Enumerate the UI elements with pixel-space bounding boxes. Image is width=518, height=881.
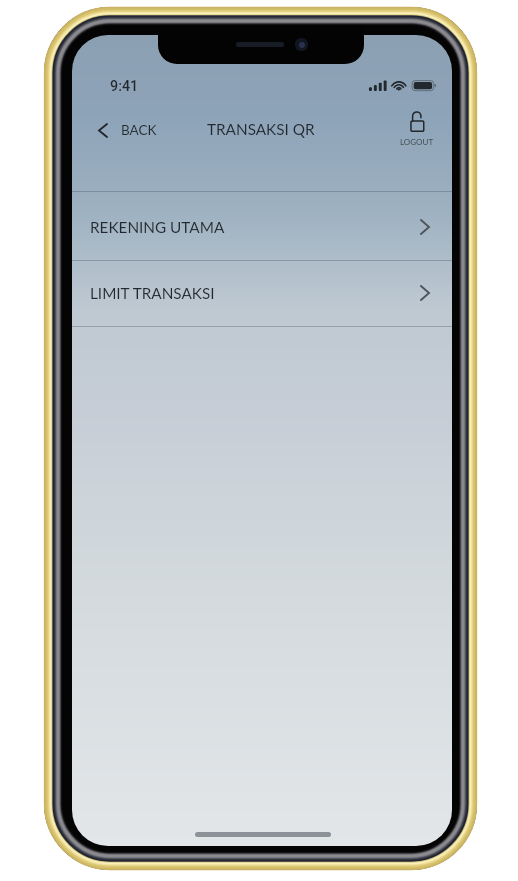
staticText: BACK xyxy=(121,122,157,138)
button[interactable]: Logout xyxy=(395,108,439,150)
button[interactable]: LIMIT TRANSAKSI xyxy=(72,261,452,326)
staticText: LOGOUT xyxy=(400,137,434,147)
button[interactable]: BACK xyxy=(90,113,167,147)
button[interactable]: REKENING UTAMA xyxy=(72,192,452,260)
staticText: TRANSAKSI QR xyxy=(207,120,315,138)
staticText: LIMIT TRANSAKSI xyxy=(90,284,215,302)
staticText: 9:41 xyxy=(110,78,139,95)
staticText: REKENING UTAMA xyxy=(90,218,225,236)
